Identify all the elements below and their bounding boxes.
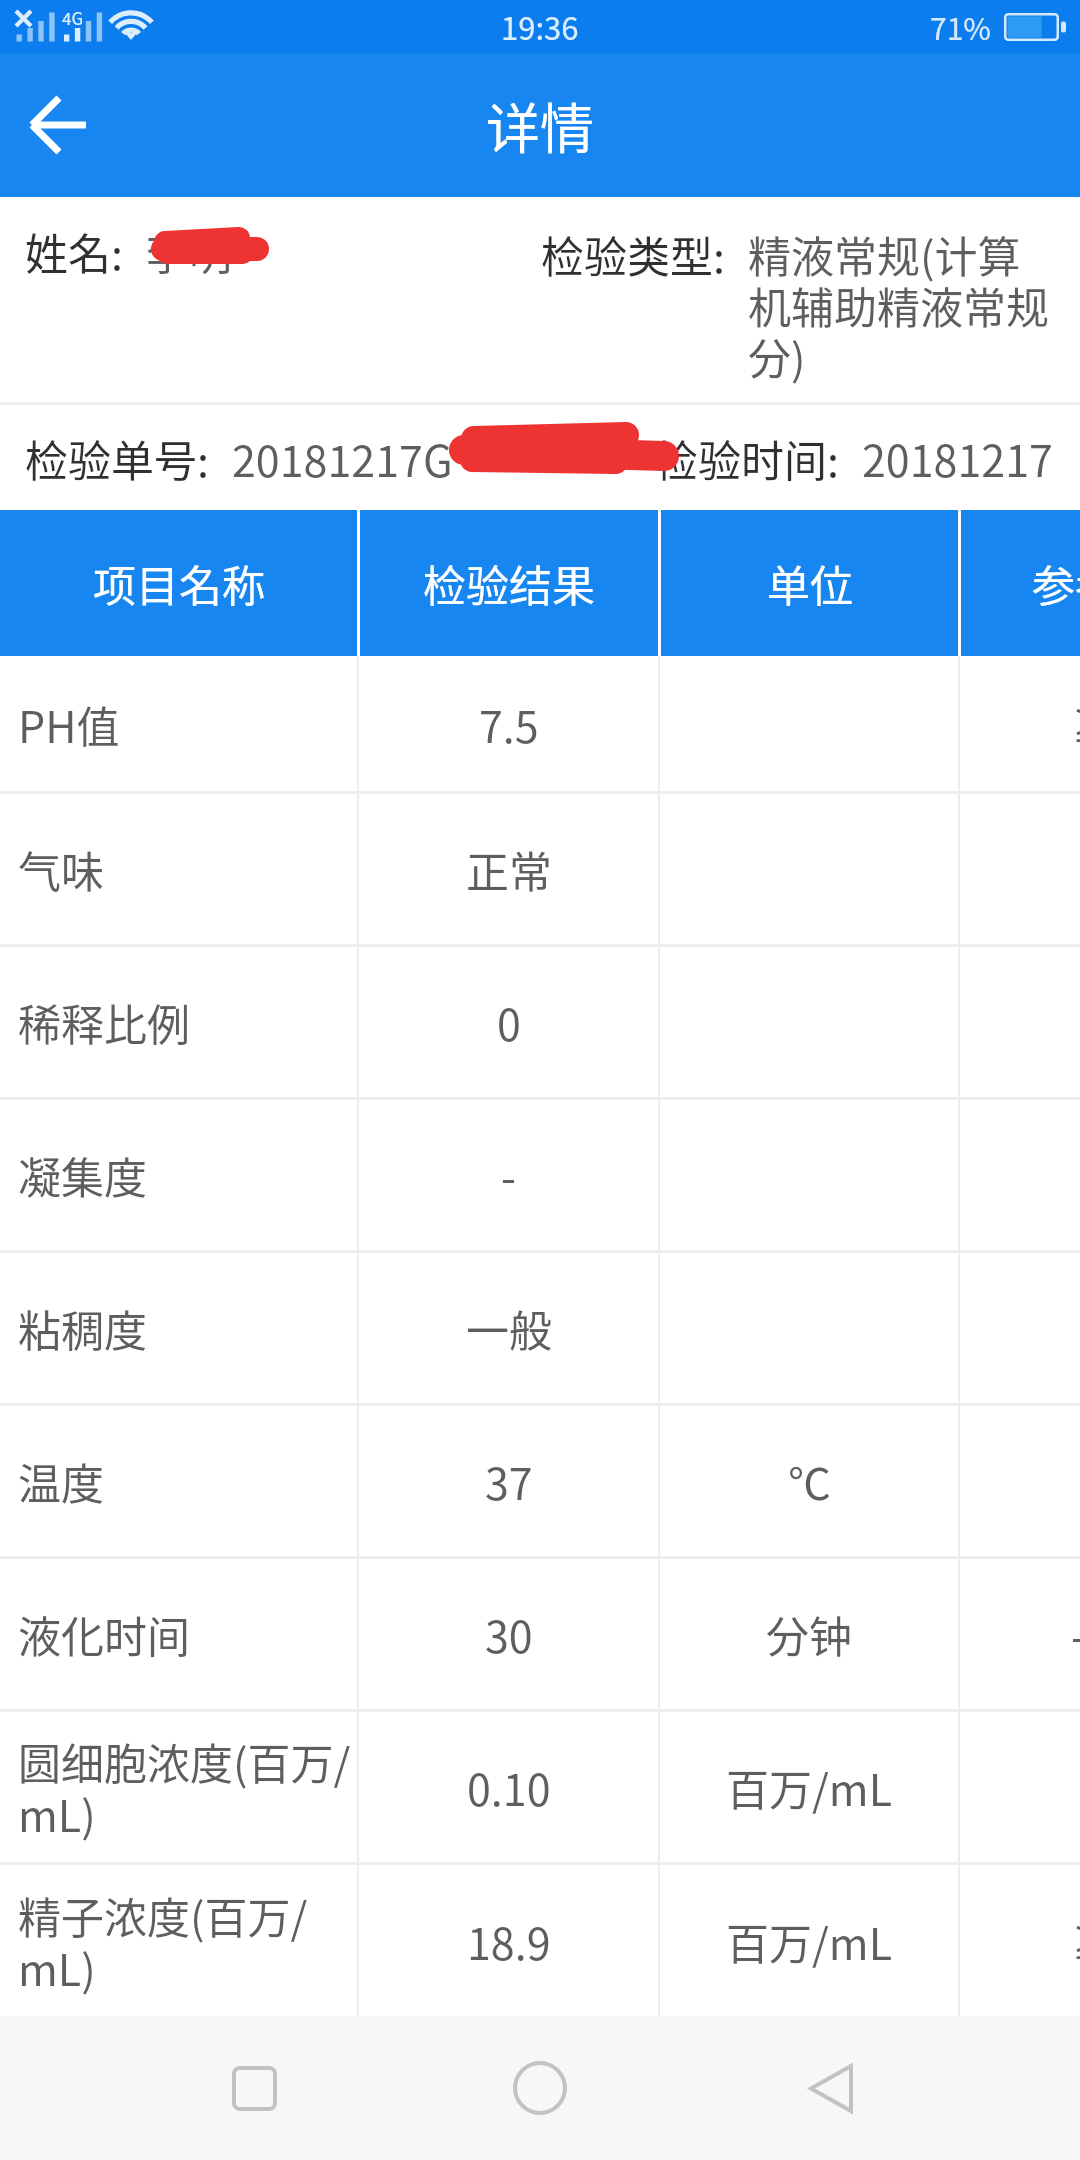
staticText: 分钟 bbox=[766, 1603, 852, 1665]
staticText: 30 bbox=[485, 1603, 533, 1665]
staticText: 一般 bbox=[466, 1297, 552, 1359]
button[interactable]: Back bbox=[741, 2016, 921, 2160]
button[interactable]: Recent apps bbox=[164, 2016, 344, 2160]
staticText: 20181217 bbox=[862, 427, 1053, 489]
staticText: 百万/mL bbox=[726, 1910, 893, 1972]
staticText: 20181217G bbox=[232, 427, 453, 489]
staticText: 37 bbox=[485, 1450, 533, 1512]
staticText: 液化时间 bbox=[18, 1603, 190, 1665]
staticText: 姓名: bbox=[25, 220, 123, 282]
staticText: PH值 bbox=[18, 693, 120, 755]
staticText: 检验单号: bbox=[25, 427, 209, 489]
staticText: 项目名称 bbox=[93, 552, 265, 614]
staticText: 参考值 bbox=[1032, 552, 1080, 614]
staticText: 19:36 bbox=[501, 4, 579, 49]
staticText: ≥15 bbox=[1071, 1910, 1080, 1972]
button[interactable]: Back bbox=[0, 53, 116, 197]
staticText: 凝集度 bbox=[18, 1144, 147, 1206]
staticText: 精子浓度(百万/ mL) bbox=[18, 1884, 308, 1998]
staticText: 0 bbox=[497, 991, 521, 1053]
staticText: 温度 bbox=[18, 1450, 104, 1512]
staticText: 李明 bbox=[146, 220, 232, 282]
staticText: -60 bbox=[1071, 1603, 1080, 1665]
staticText: 详情 bbox=[486, 86, 594, 164]
staticText: 4G bbox=[62, 5, 84, 30]
staticText: 气味 bbox=[18, 838, 104, 900]
staticText: 百万/mL bbox=[726, 1756, 893, 1818]
staticText: 71% bbox=[930, 5, 991, 48]
staticText: 稀释比例 bbox=[18, 991, 190, 1053]
staticText: ≥7.2 bbox=[1071, 693, 1080, 755]
staticText: 0.10 bbox=[467, 1756, 551, 1818]
staticText: 检验类型: bbox=[541, 223, 725, 285]
staticText: 正常 bbox=[466, 838, 552, 900]
staticText: 7.5 bbox=[479, 693, 539, 755]
staticText: 粘稠度 bbox=[18, 1297, 147, 1359]
staticText: 精液常规(计算 机辅助精液常规 分) bbox=[748, 223, 1049, 387]
staticText: - bbox=[501, 1144, 516, 1206]
staticText: 圆细胞浓度(百万/ mL) bbox=[18, 1730, 351, 1844]
staticText: 检验时间: bbox=[655, 427, 839, 489]
staticText: 单位 bbox=[767, 552, 853, 614]
button[interactable]: Home bbox=[450, 2016, 630, 2160]
staticText: 检验结果 bbox=[423, 552, 595, 614]
staticText: ℃ bbox=[788, 1450, 831, 1512]
staticText: 18.9 bbox=[467, 1910, 551, 1972]
